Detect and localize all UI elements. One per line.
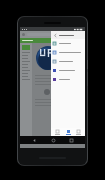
button[interactable]: More [74,128,83,136]
button[interactable]: Saved [64,128,73,136]
button[interactable] [51,75,85,84]
button[interactable] [51,57,85,66]
button[interactable]: Recent apps [67,136,75,144]
button[interactable]: Back [30,136,38,144]
button[interactable] [51,66,85,75]
button[interactable] [27,33,83,36]
button[interactable]: Recent [53,128,62,136]
button[interactable]: Home [49,136,57,144]
button[interactable] [51,39,85,48]
button[interactable] [51,48,85,57]
button[interactable]: Back [53,33,57,37]
